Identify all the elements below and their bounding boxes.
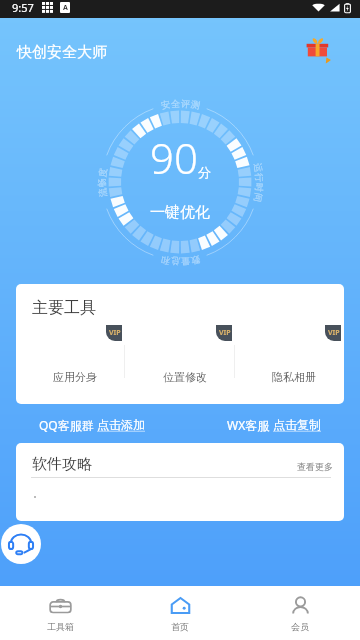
staticText: WX客服 bbox=[227, 417, 273, 433]
staticText: 主要工具 bbox=[32, 298, 96, 318]
button[interactable]: 工具箱 bbox=[0, 586, 120, 640]
staticText: 工具箱 bbox=[47, 621, 74, 632]
staticText: 度 bbox=[96, 167, 109, 178]
staticText: 一键优化 bbox=[150, 203, 210, 222]
button[interactable]: WX客服 bbox=[227, 417, 321, 433]
button[interactable]: VIP bbox=[239, 325, 344, 385]
staticText: VIP bbox=[328, 328, 340, 338]
staticText: 隐私相册 bbox=[272, 370, 316, 384]
staticText: QQ客服群 bbox=[39, 417, 97, 433]
staticText: 9:57 bbox=[12, 0, 34, 15]
staticText: 分 bbox=[198, 164, 211, 180]
button[interactable]: 首页 bbox=[120, 586, 240, 640]
button[interactable]: 会员 bbox=[240, 586, 360, 640]
staticText: 流 bbox=[96, 187, 109, 198]
staticText: 首页 bbox=[171, 621, 189, 632]
staticText: 90 bbox=[150, 129, 198, 186]
staticText: 快创安全大师 bbox=[17, 43, 107, 62]
staticText: 和 bbox=[160, 254, 171, 267]
staticText: 间 bbox=[252, 192, 265, 203]
button[interactable]: Customer service bbox=[1, 524, 41, 564]
staticText: 测 bbox=[190, 98, 201, 111]
staticText: 数 bbox=[190, 254, 201, 267]
staticText: A bbox=[63, 3, 68, 13]
staticText: 点击添加 bbox=[97, 417, 145, 432]
staticText: 量 bbox=[181, 256, 190, 267]
button[interactable]: QQ客服群 bbox=[39, 417, 145, 433]
staticText: 行 bbox=[254, 173, 265, 182]
staticText: 点击复制 bbox=[273, 417, 321, 432]
staticText: 安 bbox=[160, 98, 171, 111]
staticText: VIP bbox=[109, 328, 121, 338]
button[interactable]: 查看更多 bbox=[297, 461, 333, 472]
staticText: 查看更多 bbox=[297, 461, 333, 472]
button[interactable]: Gift bbox=[303, 33, 333, 63]
staticText: 畅 bbox=[96, 178, 107, 187]
staticText: 软件攻略 bbox=[32, 455, 92, 474]
button[interactable]: VIP bbox=[20, 325, 130, 385]
staticText: 全 bbox=[171, 98, 180, 109]
staticText: 评 bbox=[181, 98, 190, 109]
button[interactable]: VIP bbox=[130, 325, 239, 385]
staticText: 应用分身 bbox=[53, 370, 97, 384]
staticText: 会员 bbox=[291, 621, 309, 632]
staticText: 位置修改 bbox=[163, 370, 207, 384]
staticText: 总 bbox=[171, 256, 180, 267]
staticText: 时 bbox=[254, 183, 265, 192]
staticText: VIP bbox=[219, 328, 231, 338]
staticText: 运 bbox=[252, 162, 265, 173]
